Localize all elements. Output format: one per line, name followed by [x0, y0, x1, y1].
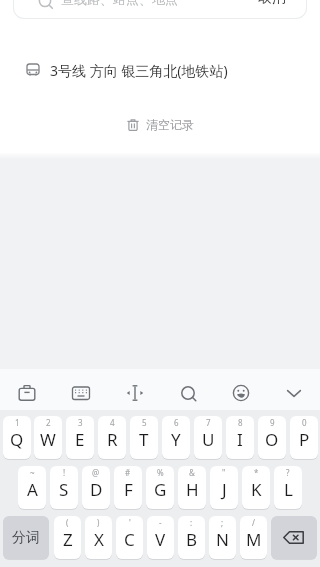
button[interactable] [0, 369, 54, 410]
staticText: S [59, 478, 69, 501]
staticText: " [222, 467, 226, 478]
button[interactable] [267, 369, 320, 410]
button[interactable]: 9 [258, 416, 286, 459]
button[interactable]: " [210, 466, 238, 509]
staticText: L [284, 478, 293, 501]
staticText: 0 [302, 417, 307, 428]
staticText: 4 [110, 417, 115, 428]
staticText: Q [10, 428, 24, 451]
staticText: Z [63, 528, 73, 551]
button[interactable]: % [146, 466, 174, 509]
staticText: N [216, 528, 229, 551]
staticText: K [251, 478, 262, 501]
button[interactable]: ) [85, 516, 112, 559]
staticText: H [186, 478, 199, 501]
staticText: 查线路、站点、地点 [61, 0, 178, 7]
button[interactable]: 7 [194, 416, 222, 459]
button[interactable]: 分词 [3, 516, 49, 559]
staticText: * [254, 467, 259, 478]
button[interactable]: 清空记录 [110, 110, 210, 138]
staticText: 清空记录 [146, 117, 194, 132]
button[interactable]: 5 [130, 416, 158, 459]
button[interactable]: ~ [18, 466, 46, 509]
button[interactable]: 3号线 方向 银三角北(地铁站) [0, 55, 320, 85]
staticText: / [252, 517, 255, 528]
staticText: V [155, 528, 166, 551]
button[interactable]: 取消 [252, 0, 296, 14]
button[interactable]: 1 [3, 416, 31, 459]
staticText: O [265, 428, 279, 451]
staticText: C [124, 528, 135, 551]
staticText: T [139, 428, 149, 451]
staticText: ? [286, 467, 290, 478]
staticText: 取消 [258, 0, 286, 7]
staticText: ( [66, 517, 69, 528]
button[interactable] [14, 0, 306, 18]
staticText: & [189, 467, 195, 478]
button[interactable]: ' [116, 516, 143, 559]
staticText: 3 [78, 417, 83, 428]
button[interactable]: * [242, 466, 270, 509]
button[interactable]: 2 [34, 416, 62, 459]
button[interactable]: ? [274, 466, 302, 509]
staticText: ; [221, 517, 224, 528]
button[interactable]: @ [82, 466, 110, 509]
button[interactable] [214, 369, 267, 410]
staticText: 7 [206, 417, 211, 428]
button[interactable] [54, 369, 108, 410]
staticText: B [186, 528, 198, 551]
button[interactable] [161, 369, 214, 410]
button[interactable]: - [147, 516, 174, 559]
button[interactable]: & [178, 466, 206, 509]
staticText: 8 [238, 417, 243, 428]
button[interactable]: ( [54, 516, 81, 559]
staticText: 1 [15, 417, 20, 428]
button[interactable]: ; [209, 516, 236, 559]
staticText: W [40, 428, 56, 451]
staticText: % [157, 467, 164, 478]
staticText: U [202, 428, 215, 451]
button[interactable]: 0 [290, 416, 318, 459]
button[interactable]: / [240, 516, 267, 559]
staticText: 5 [142, 417, 147, 428]
staticText: 6 [174, 417, 179, 428]
staticText: M [246, 528, 262, 551]
staticText: D [90, 478, 103, 501]
staticText: ' [129, 517, 131, 528]
button[interactable]: ! [50, 466, 78, 509]
staticText: Y [171, 428, 181, 451]
button[interactable]: 4 [98, 416, 126, 459]
button[interactable]: : [178, 516, 205, 559]
staticText: 2 [46, 417, 51, 428]
staticText: - [159, 517, 162, 528]
button[interactable]: 3 [66, 416, 94, 459]
staticText: R [107, 428, 118, 451]
staticText: ~ [30, 467, 35, 478]
button[interactable] [108, 369, 161, 410]
staticText: J [222, 478, 227, 501]
staticText: I [237, 428, 243, 451]
staticText: ) [97, 517, 100, 528]
staticText: ! [63, 467, 66, 478]
staticText: @ [92, 467, 100, 478]
staticText: E [75, 428, 85, 451]
staticText: X [94, 528, 104, 551]
staticText: G [154, 478, 167, 501]
button[interactable] [271, 516, 317, 559]
staticText: A [27, 478, 38, 501]
staticText: # [125, 467, 131, 478]
staticText: : [190, 517, 193, 528]
staticText: P [299, 428, 310, 451]
staticText: 9 [270, 417, 275, 428]
button[interactable]: 6 [162, 416, 190, 459]
staticText: 分词 [12, 529, 40, 547]
staticText: 3号线 方向 银三角北(地铁站) [50, 61, 228, 80]
button[interactable]: 8 [226, 416, 254, 459]
button[interactable]: # [114, 466, 142, 509]
staticText: F [124, 478, 133, 501]
